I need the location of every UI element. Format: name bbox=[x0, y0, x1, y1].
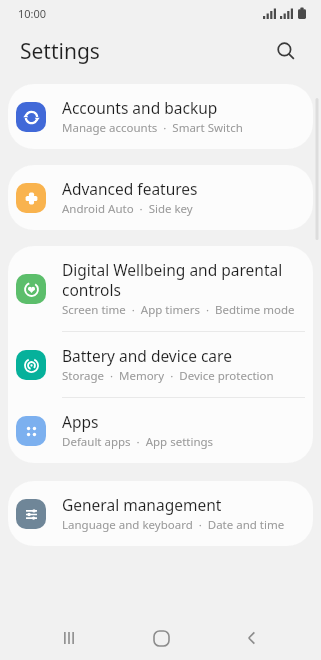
button[interactable]: Digital Wellbeing and parental controls bbox=[8, 246, 313, 331]
staticText: Manage accounts · Smart Switch bbox=[62, 120, 243, 136]
staticText: Language and keyboard · Date and time bbox=[62, 517, 285, 533]
staticText: Battery and device care bbox=[62, 345, 232, 366]
button[interactable]: Recent apps bbox=[46, 616, 92, 660]
staticText: Default apps · App settings bbox=[62, 434, 214, 450]
button[interactable]: Battery and device care bbox=[8, 332, 313, 397]
staticText: 10:00 bbox=[18, 6, 47, 21]
button[interactable]: Home bbox=[138, 616, 184, 660]
button[interactable]: Advanced features bbox=[8, 165, 313, 230]
staticText: General management bbox=[62, 494, 222, 515]
button[interactable]: Search bbox=[270, 35, 302, 67]
staticText: Advanced features bbox=[62, 178, 198, 199]
button[interactable]: General management bbox=[8, 481, 313, 546]
staticText: Settings bbox=[20, 37, 100, 66]
button[interactable]: Apps bbox=[8, 398, 313, 463]
staticText: Screen time · App timers · Bedtime mode bbox=[62, 302, 295, 318]
button[interactable]: Back bbox=[229, 616, 275, 660]
staticText: Storage · Memory · Device protection bbox=[62, 368, 274, 384]
staticText: Digital Wellbeing and parental controls bbox=[62, 259, 299, 300]
staticText: Android Auto · Side key bbox=[62, 201, 193, 217]
button[interactable]: Accounts and backup bbox=[8, 84, 313, 149]
staticText: Apps bbox=[62, 411, 99, 432]
staticText: Accounts and backup bbox=[62, 97, 218, 118]
